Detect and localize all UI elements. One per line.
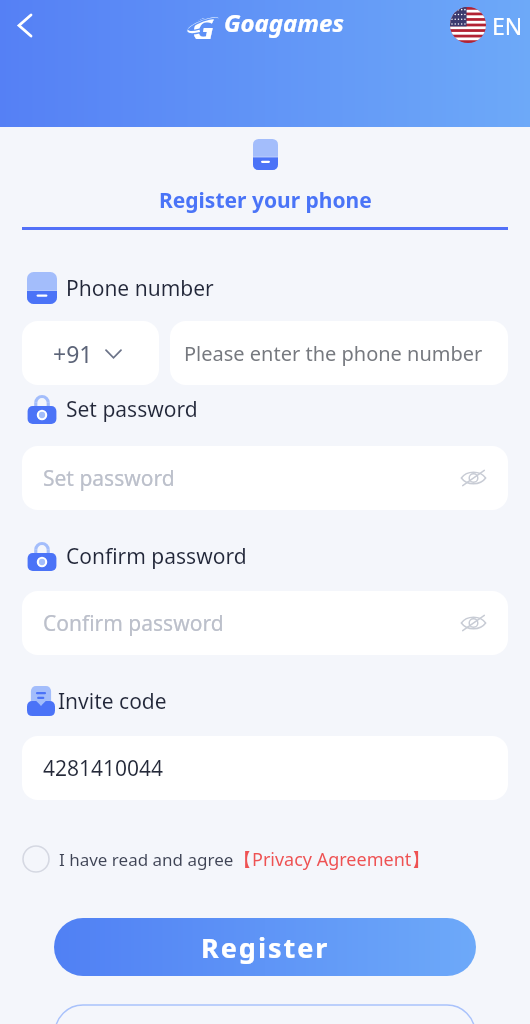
button[interactable]: +91 bbox=[22, 321, 159, 385]
button[interactable]: Back bbox=[6, 6, 44, 44]
staticText: Goagames bbox=[224, 6, 344, 39]
staticText: Register bbox=[201, 929, 330, 966]
button[interactable]: Toggle password visibility bbox=[455, 460, 491, 496]
staticText: Please enter the phone number bbox=[184, 340, 483, 367]
staticText: Set password bbox=[66, 395, 198, 424]
staticText: Confirm password bbox=[66, 542, 247, 571]
button[interactable]: Set password bbox=[22, 446, 508, 510]
staticText: EN bbox=[492, 10, 523, 41]
button[interactable]: EN bbox=[450, 7, 523, 43]
staticText: Register your phone bbox=[159, 186, 372, 215]
staticText: Invite code bbox=[58, 687, 167, 716]
button[interactable]: Register bbox=[54, 918, 476, 976]
staticText: Set password bbox=[43, 464, 175, 493]
button[interactable]: Please enter the phone number bbox=[170, 321, 508, 385]
staticText: +91 bbox=[53, 338, 93, 369]
staticText: Confirm password bbox=[43, 609, 224, 638]
button[interactable]: Confirm password bbox=[22, 591, 508, 655]
button[interactable]: 4281410044 bbox=[22, 736, 508, 800]
staticText: 4281410044 bbox=[43, 754, 164, 783]
staticText: 【Privacy Agreement】 bbox=[234, 847, 430, 872]
staticText: G bbox=[192, 7, 215, 39]
button[interactable]: I have read and agree bbox=[22, 843, 430, 875]
staticText: Phone number bbox=[66, 274, 214, 303]
button[interactable]: Login bbox=[54, 1004, 476, 1024]
button[interactable]: Toggle password visibility bbox=[455, 605, 491, 641]
staticText: I have read and agree bbox=[59, 848, 234, 871]
